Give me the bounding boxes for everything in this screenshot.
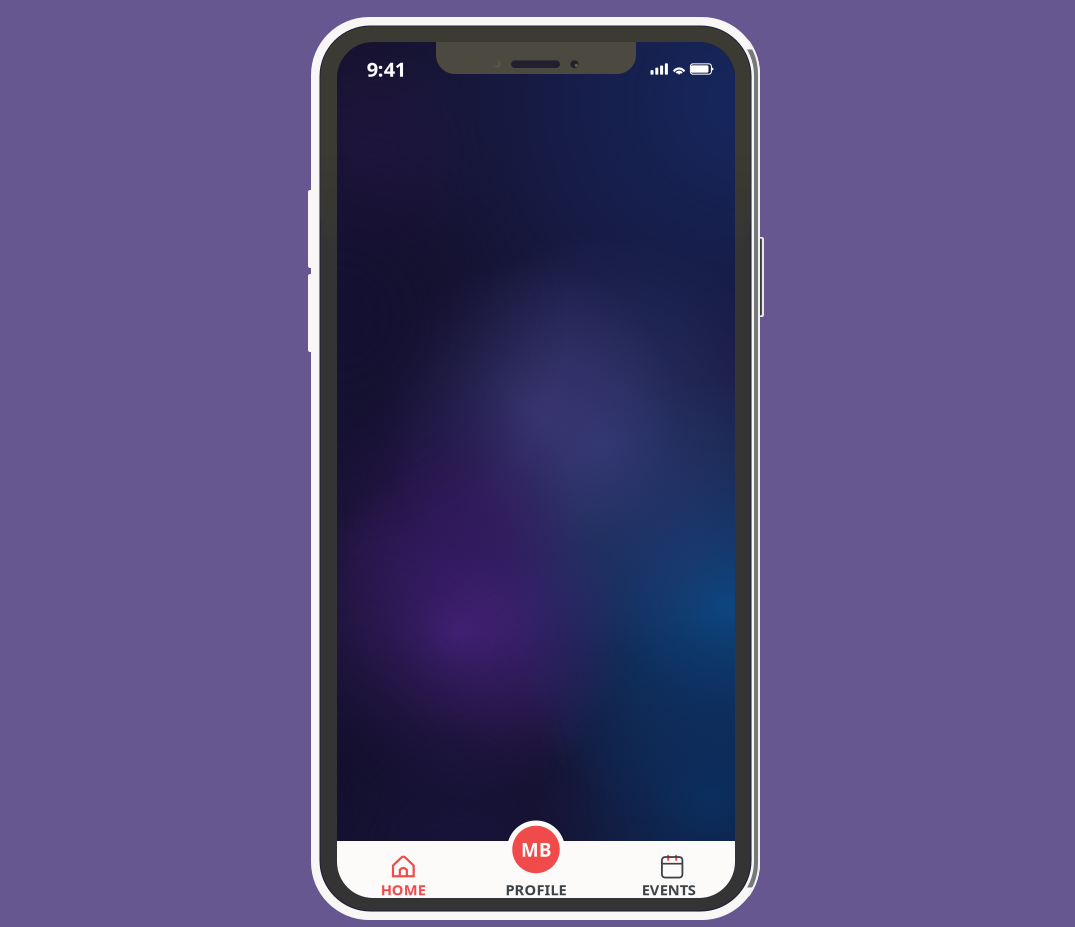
staticText: PROFILE <box>505 880 566 899</box>
staticText: 9:41 <box>367 56 406 82</box>
button[interactable]: EVENTS <box>602 841 735 898</box>
staticText: EVENTS <box>642 880 696 899</box>
staticText: HOME <box>381 880 426 899</box>
staticText: MB <box>521 837 551 862</box>
button[interactable]: Profile <box>507 820 565 878</box>
button[interactable]: HOME <box>337 841 470 898</box>
button[interactable]: PROFILE <box>470 841 602 898</box>
